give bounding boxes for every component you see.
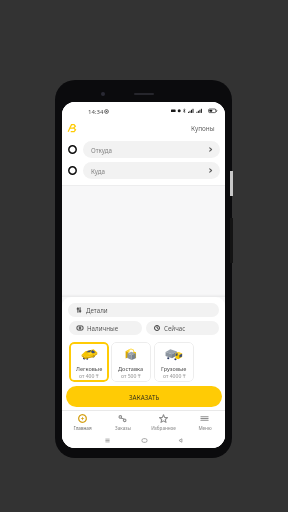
button[interactable]: Избранное: [143, 411, 184, 434]
staticText: Доставка: [118, 365, 144, 372]
other: Back: [177, 437, 184, 444]
staticText: Меню: [198, 425, 212, 431]
button[interactable]: Купоны: [186, 122, 215, 134]
staticText: от 400 ₸: [79, 373, 99, 380]
button[interactable]: Наличные: [69, 321, 142, 335]
button[interactable]: Сейчас: [146, 321, 219, 335]
button[interactable]: ЗАКАЗАТЬ: [66, 386, 222, 407]
other: App logo: [68, 124, 76, 132]
staticText: Наличные: [87, 324, 119, 332]
staticText: от 4000 ₸: [163, 373, 186, 380]
staticText: Грузовые: [161, 365, 187, 372]
staticText: 14:34: [88, 108, 104, 116]
staticText: Купоны: [191, 124, 215, 133]
button[interactable]: Главная: [62, 411, 102, 434]
staticText: Легковые: [76, 365, 103, 372]
button[interactable]: Легковые: [69, 342, 109, 382]
staticText: Заказы: [115, 425, 131, 431]
button[interactable]: Откуда: [62, 141, 225, 158]
staticText: от 500 ₸: [121, 373, 141, 380]
button[interactable]: Меню: [184, 411, 225, 434]
staticText: Главная: [73, 425, 92, 431]
staticText: Куда: [91, 167, 105, 175]
staticText: Откуда: [91, 146, 112, 154]
button[interactable]: Доставка: [111, 342, 151, 382]
button[interactable]: Куда: [62, 162, 225, 179]
button[interactable]: Детали: [68, 303, 219, 317]
staticText: ЗАКАЗАТЬ: [129, 393, 160, 401]
staticText: Детали: [86, 306, 108, 314]
staticText: Сейчас: [164, 324, 186, 332]
staticText: Избранное: [151, 425, 176, 431]
other: Home: [141, 437, 148, 444]
button[interactable]: Заказы: [102, 411, 143, 434]
button[interactable]: Грузовые: [154, 342, 194, 382]
other: Recents: [104, 437, 111, 444]
